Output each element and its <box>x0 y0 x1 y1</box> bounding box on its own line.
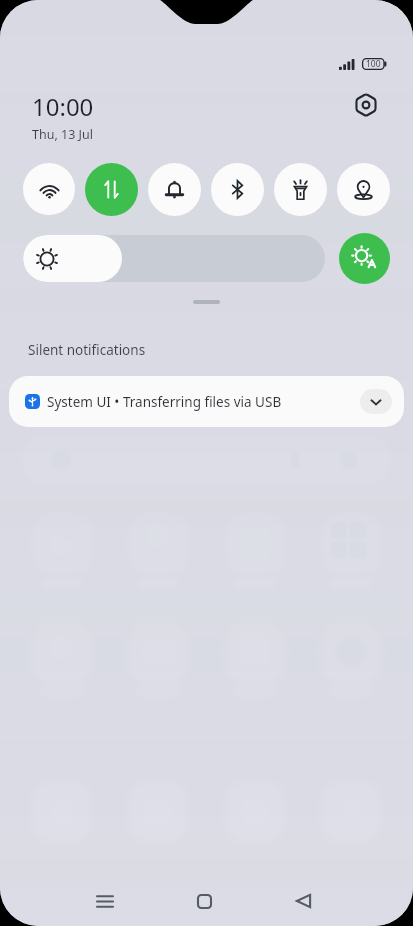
button[interactable]: System UI • Transferring files via USB <box>9 376 404 427</box>
button[interactable]: Back <box>279 877 327 925</box>
button[interactable]: Location <box>337 163 390 216</box>
button[interactable]: Recent apps <box>81 877 129 925</box>
staticText: Thu, 13 Jul <box>32 126 93 143</box>
staticText: 100 <box>366 58 381 70</box>
button[interactable]: Do not disturb <box>148 163 201 216</box>
button[interactable]: Flashlight <box>274 163 327 216</box>
button[interactable]: Settings <box>346 85 386 125</box>
button[interactable]: Expand notification <box>360 389 392 414</box>
button[interactable]: Wi-Fi <box>23 163 75 215</box>
staticText: Silent notifications <box>28 341 146 359</box>
button[interactable]: Bluetooth <box>211 163 264 216</box>
button[interactable]: Auto brightness <box>339 233 390 284</box>
staticText: 10:00 <box>32 90 94 123</box>
button[interactable]: Brightness <box>23 235 325 282</box>
staticText: System UI • Transferring files via USB <box>47 393 282 411</box>
button[interactable]: Home <box>180 877 228 925</box>
button[interactable]: Mobile data <box>85 163 138 216</box>
